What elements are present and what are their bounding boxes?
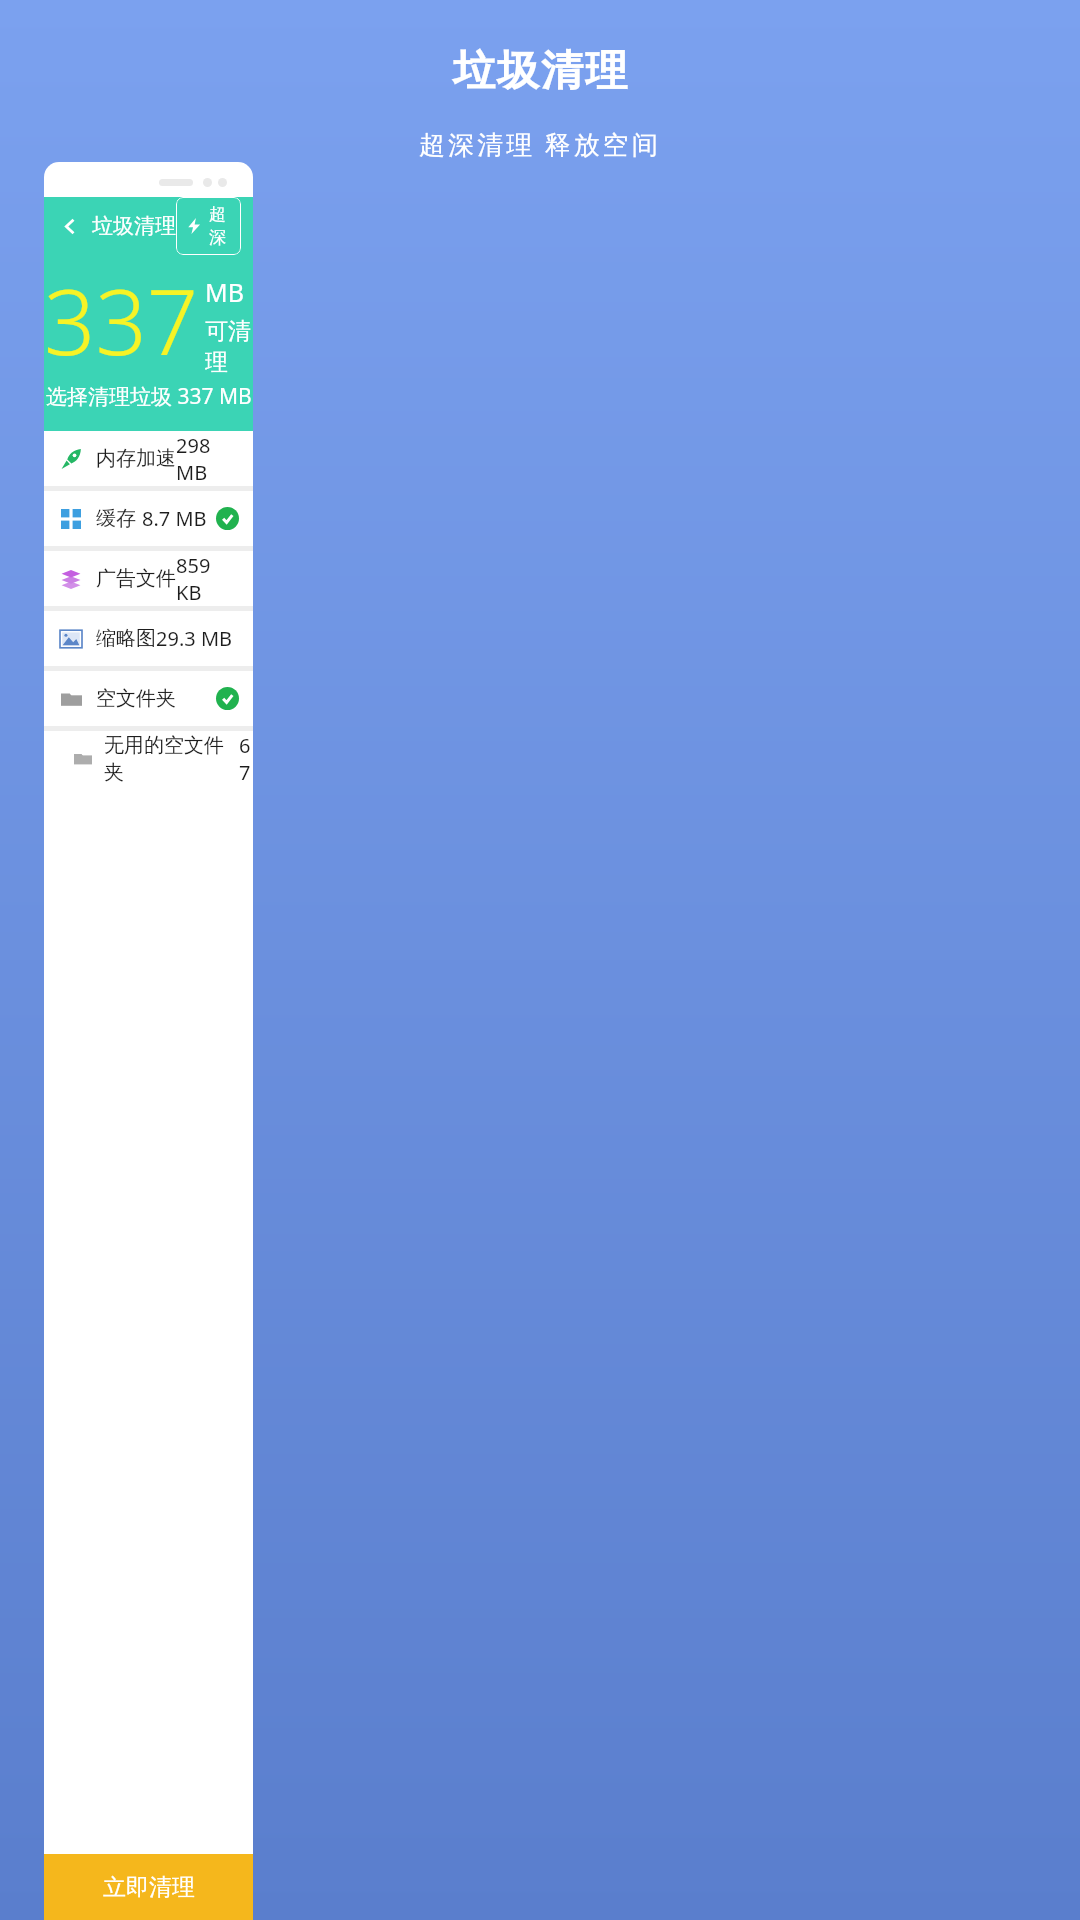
button[interactable]: 立即清理 [44, 1854, 253, 1920]
staticText: 选择清理垃圾 337 MB [46, 382, 252, 411]
staticText: 298 MB [176, 432, 239, 486]
staticText: 缩略图 [96, 626, 156, 651]
staticText: 超深清理 释放空间 [419, 126, 661, 162]
staticText: 超深清理 [209, 204, 231, 248]
staticText: 立即清理 [103, 1873, 195, 1902]
button[interactable]: Back [56, 212, 84, 240]
button[interactable]: 无用的空文件夹 [44, 731, 253, 786]
staticText: 垃圾清理 [452, 45, 628, 98]
button[interactable]: 缩略图 [44, 611, 253, 666]
staticText: 内存加速 [96, 446, 176, 471]
button[interactable]: 空文件夹 [44, 671, 253, 726]
staticText: 缓存 [96, 506, 136, 531]
staticText: 可清理 [205, 317, 253, 377]
staticText: 空文件夹 [96, 686, 176, 711]
staticText: 无用的空文件夹 [104, 733, 239, 785]
staticText: MB [205, 275, 244, 309]
staticText: 337 [44, 259, 199, 382]
staticText: 29.3 MB [156, 625, 233, 652]
button[interactable]: 缓存 [44, 491, 253, 546]
staticText: 垃圾清理 [92, 213, 176, 239]
button[interactable]: 超深清理 [176, 197, 241, 255]
button[interactable]: 广告文件 [44, 551, 253, 606]
staticText: 8.7 MB [142, 505, 207, 532]
staticText: 859 KB [176, 552, 239, 606]
staticText: 广告文件 [96, 566, 176, 591]
button[interactable]: 内存加速 [44, 431, 253, 486]
